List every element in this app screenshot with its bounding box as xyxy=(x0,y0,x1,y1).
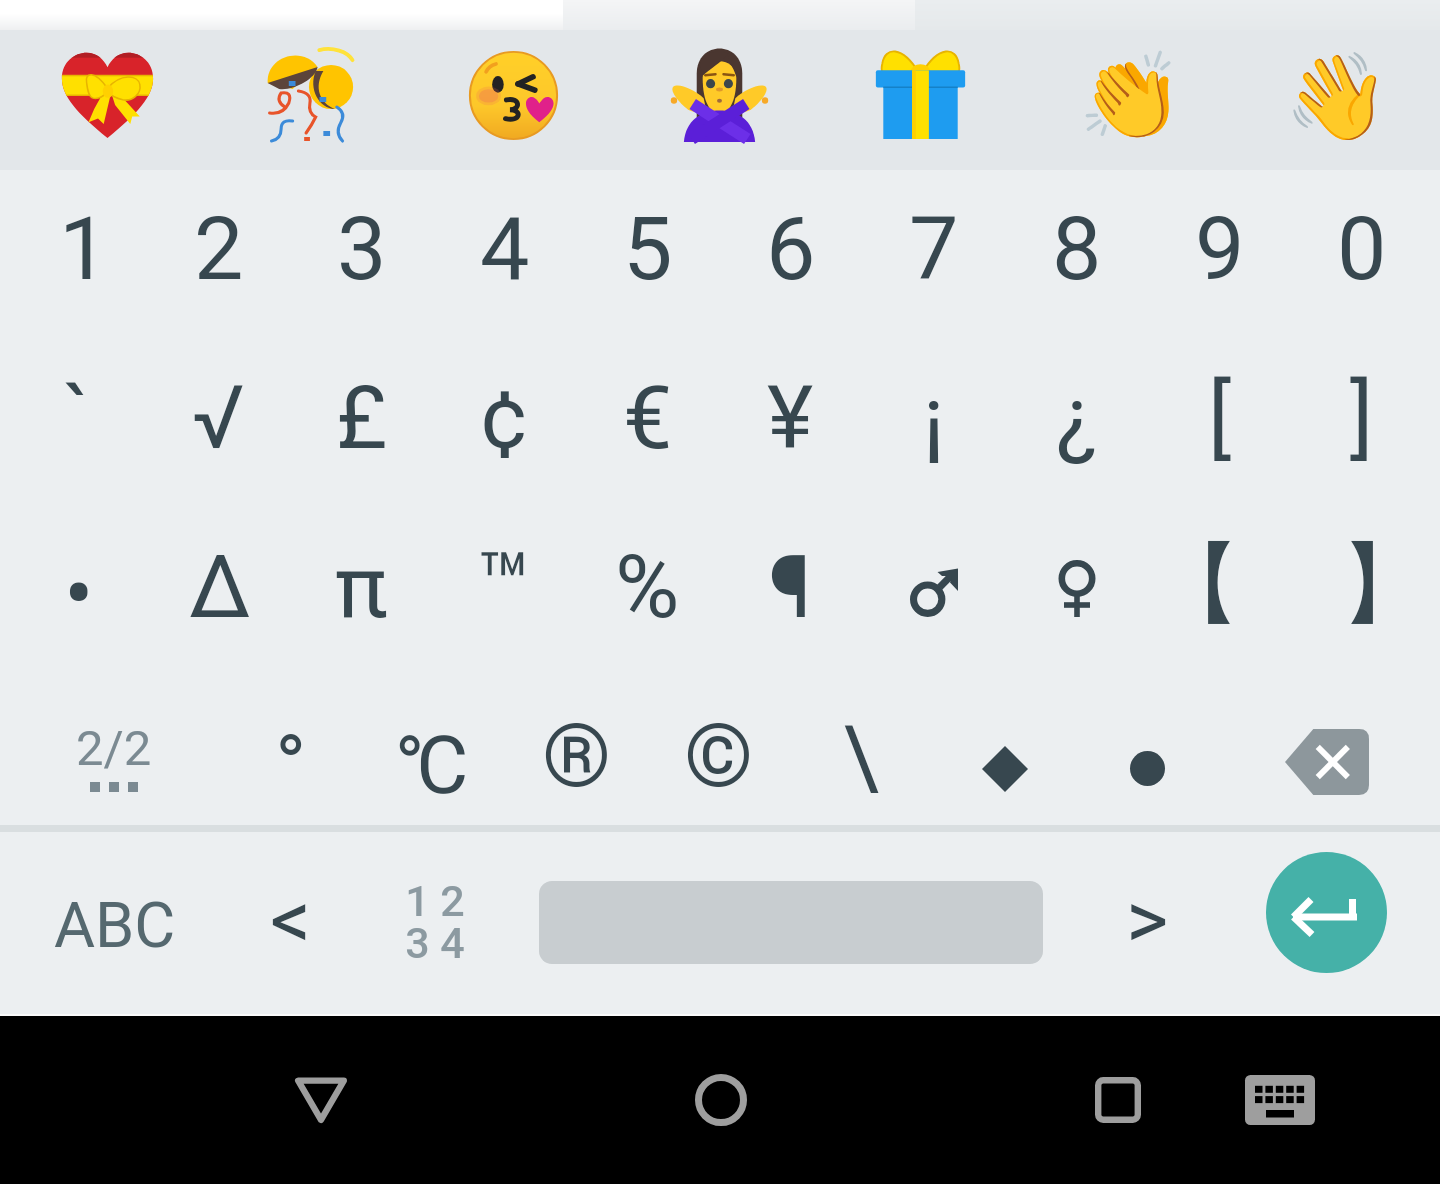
staticText: 3 xyxy=(337,197,387,300)
button[interactable]: Space xyxy=(505,832,1077,1016)
staticText: 】 xyxy=(1340,529,1428,640)
staticText: ¶ xyxy=(769,535,813,638)
button[interactable]: Black circle xyxy=(1076,675,1219,844)
staticText: π xyxy=(335,535,388,638)
staticText: % xyxy=(615,535,680,638)
button[interactable]: £ xyxy=(290,338,433,507)
button[interactable]: 4 xyxy=(433,169,576,338)
button[interactable]: 0 xyxy=(1290,169,1433,338)
staticText: £ xyxy=(336,366,388,469)
button[interactable]: Female sign xyxy=(1005,506,1148,675)
button[interactable]: √ xyxy=(147,338,290,507)
staticText: € xyxy=(623,366,673,469)
staticText: ® xyxy=(542,704,612,807)
button[interactable]: Heart with ribbon xyxy=(0,30,205,170)
button[interactable]: ® xyxy=(505,675,648,844)
button[interactable]: Move cursor right xyxy=(1076,832,1219,1016)
staticText: ` xyxy=(63,366,91,469)
staticText: \ xyxy=(843,706,880,809)
staticText: 1 2 3 4 xyxy=(405,876,465,969)
button[interactable]: 1 xyxy=(5,169,148,338)
staticText: 👋 xyxy=(1284,47,1390,147)
button[interactable]: Hide keyboard xyxy=(241,1016,401,1184)
button[interactable]: Enter xyxy=(1266,852,1387,973)
button[interactable]: Wrapped gift xyxy=(822,30,1028,170)
staticText: 9 xyxy=(1195,197,1245,300)
button[interactable]: € xyxy=(576,338,719,507)
staticText: 8 xyxy=(1052,197,1102,300)
staticText: 6 xyxy=(766,197,816,300)
button[interactable]: 9 xyxy=(1148,169,1291,338)
staticText: ™ xyxy=(477,533,533,636)
staticText: ¢ xyxy=(480,366,529,469)
staticText: ¥ xyxy=(767,366,814,469)
staticText: 2/2 xyxy=(76,720,152,777)
button[interactable]: Backspace xyxy=(1219,675,1433,844)
button[interactable]: Numeric keypad xyxy=(362,832,505,1016)
button[interactable]: © xyxy=(647,675,790,844)
staticText: 4 xyxy=(480,197,530,300)
staticText: 7 xyxy=(909,197,959,300)
button[interactable]: Black diamond xyxy=(933,675,1076,844)
button[interactable]: ℃ xyxy=(362,675,505,844)
staticText: 【 xyxy=(1153,529,1241,640)
staticText: 2 xyxy=(194,197,244,300)
button[interactable]: ¶ xyxy=(719,506,862,675)
button[interactable]: Face blowing a kiss xyxy=(410,30,616,170)
button[interactable]: Male sign xyxy=(862,506,1005,675)
button[interactable]: Δ xyxy=(147,506,290,675)
staticText: © xyxy=(684,704,754,807)
button[interactable]: Confetti ball xyxy=(205,30,410,170)
staticText: 0 xyxy=(1337,197,1387,300)
button[interactable]: 6 xyxy=(719,169,862,338)
staticText: ] xyxy=(1350,366,1374,469)
button[interactable]: 【 xyxy=(1148,506,1291,675)
button[interactable]: 8 xyxy=(1005,169,1148,338)
staticText: > xyxy=(1126,873,1169,968)
button[interactable]: ¢ xyxy=(433,338,576,507)
button[interactable]: Home xyxy=(641,1016,801,1184)
staticText: 1 xyxy=(59,197,109,300)
button[interactable]: [ xyxy=(1148,338,1291,507)
staticText: √ xyxy=(192,366,245,469)
button[interactable]: \ xyxy=(790,675,933,844)
button[interactable]: • xyxy=(5,506,148,675)
staticText: ¿ xyxy=(1056,366,1098,469)
staticText: ° xyxy=(275,716,307,814)
button[interactable]: ¡ xyxy=(862,338,1005,507)
button[interactable]: Move cursor left xyxy=(219,832,362,1016)
staticText: Δ xyxy=(189,535,252,638)
button[interactable]: Page 2 of 2 xyxy=(0,675,219,844)
button[interactable]: Recent apps xyxy=(1038,1016,1198,1184)
button[interactable]: ] xyxy=(1290,338,1433,507)
button[interactable]: Clapping hands xyxy=(1028,30,1234,170)
button[interactable]: 5 xyxy=(576,169,719,338)
button[interactable]: π xyxy=(290,506,433,675)
staticText: ¡ xyxy=(923,366,945,469)
button[interactable]: ` xyxy=(5,338,148,507)
staticText: < xyxy=(270,873,312,968)
staticText: ℃ xyxy=(398,719,469,813)
button[interactable]: Person gesturing no xyxy=(616,30,822,170)
button[interactable]: % xyxy=(576,506,719,675)
staticText: ABC xyxy=(54,889,176,963)
button[interactable]: ™ xyxy=(433,506,576,675)
staticText: 5 xyxy=(623,197,673,300)
button[interactable]: ° xyxy=(219,675,362,844)
button[interactable]: Switch keyboard xyxy=(1200,1016,1360,1184)
button[interactable]: 2 xyxy=(147,169,290,338)
button[interactable]: 3 xyxy=(290,169,433,338)
button[interactable]: Waving hand xyxy=(1234,30,1440,170)
staticText: [ xyxy=(1208,366,1232,469)
staticText: 👏 xyxy=(1078,47,1184,147)
button[interactable]: ABC xyxy=(0,832,219,1016)
button[interactable]: 】 xyxy=(1290,506,1433,675)
staticText: • xyxy=(64,542,94,645)
button[interactable]: ¥ xyxy=(719,338,862,507)
button[interactable]: 7 xyxy=(862,169,1005,338)
button[interactable]: ¿ xyxy=(1005,338,1148,507)
